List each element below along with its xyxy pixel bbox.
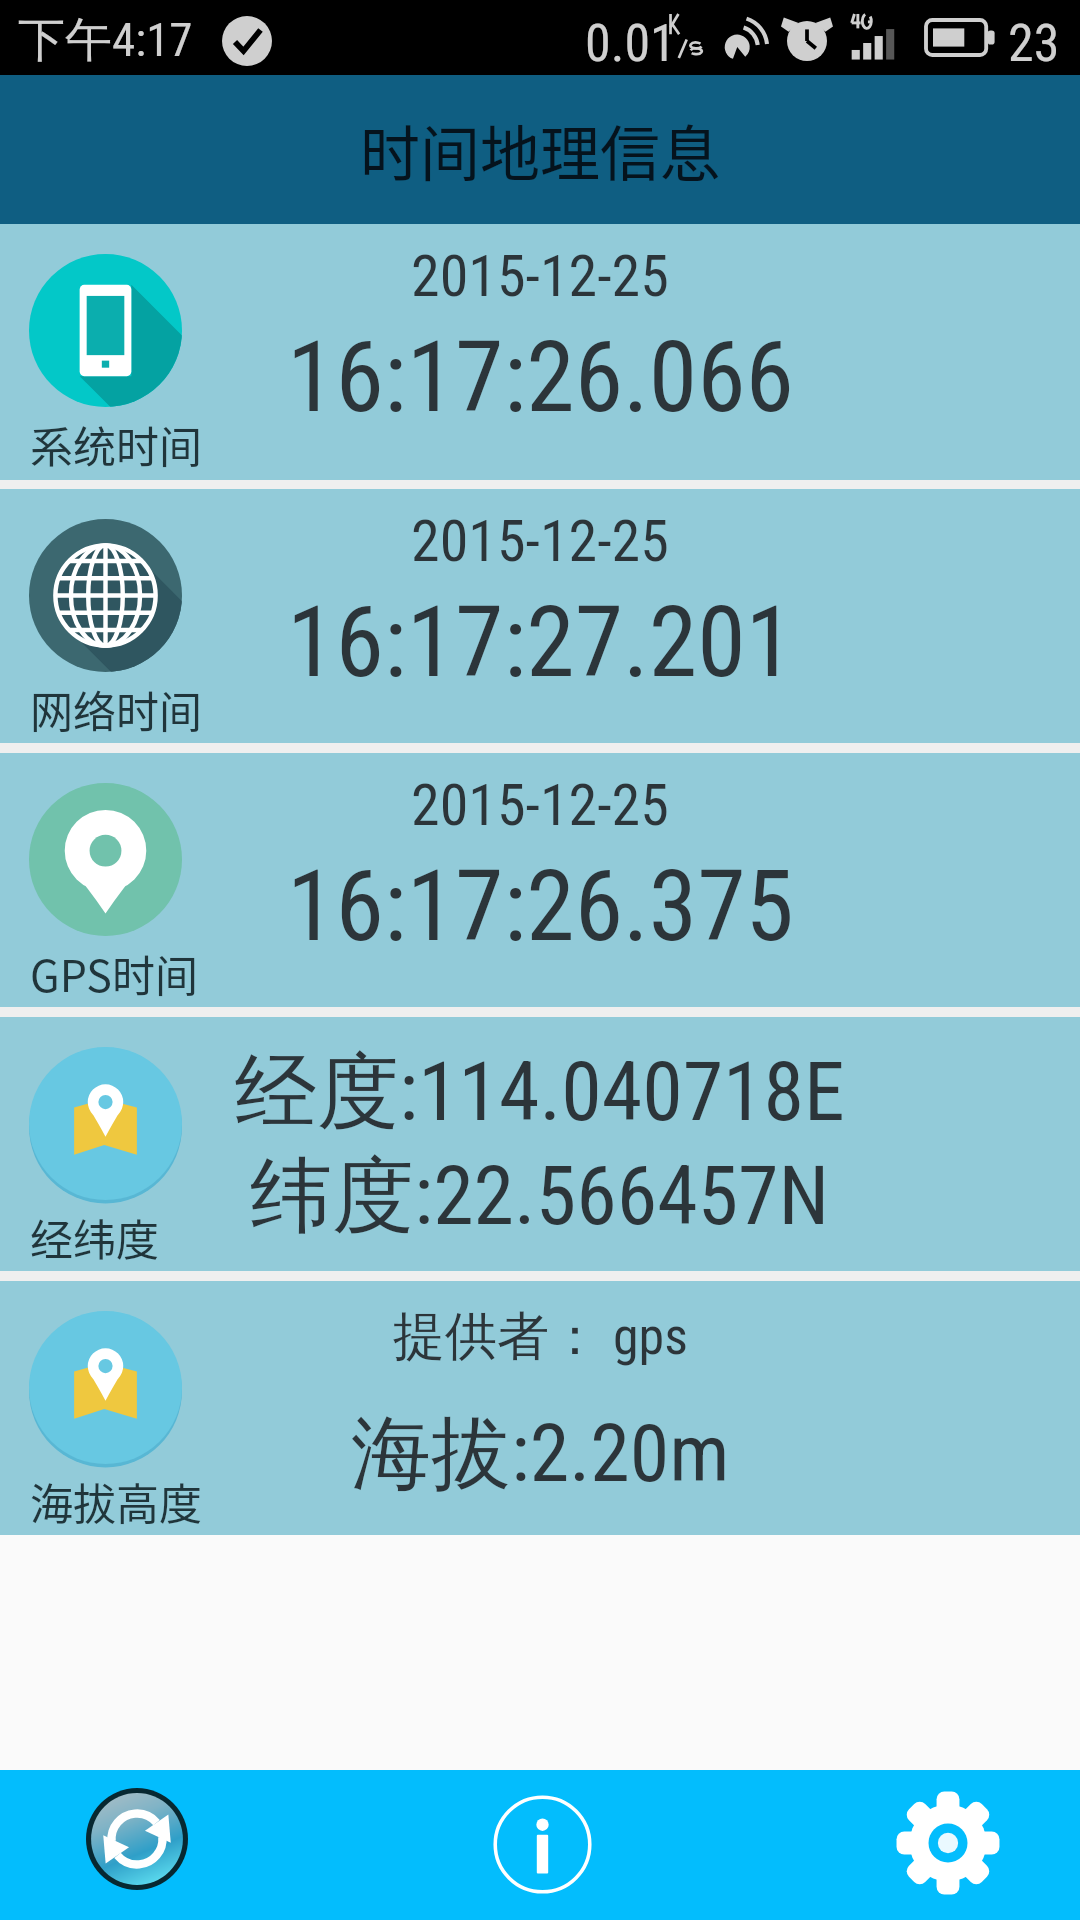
staticText: 海拔:2.20m — [351, 1404, 730, 1505]
button[interactable]: 系统时间 — [0, 224, 1080, 480]
staticText: 海拔高度 — [30, 1470, 202, 1532]
staticText: GPS时间 — [30, 942, 199, 1004]
staticText: 网络时间 — [30, 678, 202, 740]
staticText: 16:17:26.375 — [287, 849, 794, 964]
button[interactable]: Refresh — [0, 1770, 340, 1920]
button[interactable]: 经纬度 — [0, 1017, 1080, 1271]
button[interactable]: 海拔高度 — [0, 1281, 1080, 1535]
staticText: 系统时间 — [30, 413, 202, 475]
button[interactable]: 网络时间 — [0, 489, 1080, 743]
staticText: 提供者： gps — [393, 1304, 688, 1370]
staticText: 0.01 — [585, 13, 676, 74]
button[interactable]: Settings — [740, 1770, 1080, 1920]
staticText: 2015-12-25 — [411, 771, 669, 839]
button[interactable]: GPS时间 — [0, 753, 1080, 1007]
staticText: 23 — [1008, 13, 1060, 74]
staticText: 2015-12-25 — [411, 242, 669, 310]
staticText: 纬度:22.566457N — [250, 1145, 830, 1248]
staticText: 经纬度 — [30, 1206, 159, 1268]
staticText: 2015-12-25 — [411, 507, 669, 575]
staticText: 下午4:17 — [18, 11, 193, 70]
staticText: 经度:114.040718E — [235, 1041, 845, 1144]
staticText: 16:17:27.201 — [287, 585, 794, 700]
staticText: 16:17:26.066 — [287, 320, 794, 435]
button[interactable]: Info — [340, 1770, 740, 1920]
staticText: 时间地理信息 — [360, 106, 720, 193]
